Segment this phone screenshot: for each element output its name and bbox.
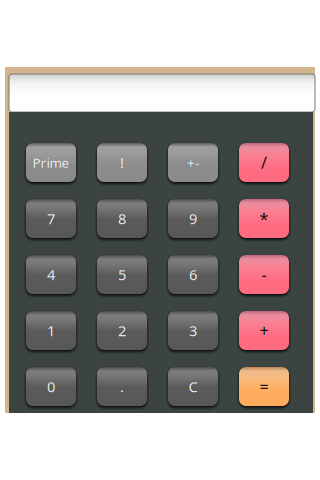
staticText: +-	[187, 154, 199, 171]
staticText: Prime	[32, 154, 69, 171]
staticText: +	[259, 320, 268, 341]
button[interactable]: 9	[168, 199, 218, 238]
button[interactable]: 4	[26, 255, 76, 294]
button[interactable]: -	[239, 255, 289, 294]
staticText: 7	[47, 209, 55, 228]
staticText: *	[259, 208, 268, 229]
button[interactable]: 1	[26, 311, 76, 350]
staticText: 3	[189, 321, 197, 340]
button[interactable]: +	[239, 311, 289, 350]
button[interactable]: 7	[26, 199, 76, 238]
staticText: C	[188, 377, 197, 396]
button[interactable]: *	[239, 199, 289, 238]
button[interactable]: 5	[97, 255, 147, 294]
staticText: =	[259, 376, 268, 397]
button[interactable]: 3	[168, 311, 218, 350]
button[interactable]: !	[97, 143, 147, 182]
button[interactable]: =	[239, 367, 289, 406]
staticText: 0	[47, 377, 55, 396]
staticText: 2	[118, 321, 126, 340]
staticText: 1	[47, 321, 55, 340]
button[interactable]: Prime	[26, 143, 76, 182]
button[interactable]: 0	[26, 367, 76, 406]
staticText: 6	[189, 265, 197, 284]
staticText: 8	[118, 209, 126, 228]
staticText: .	[120, 377, 124, 396]
button[interactable]: 6	[168, 255, 218, 294]
button[interactable]: 8	[97, 199, 147, 238]
staticText: 5	[118, 265, 126, 284]
staticText: -	[261, 264, 266, 285]
button[interactable]: /	[239, 143, 289, 182]
button[interactable]: +-	[168, 143, 218, 182]
staticText: 4	[47, 265, 55, 284]
button[interactable]: 2	[97, 311, 147, 350]
staticText: /	[261, 152, 267, 173]
staticText: 9	[189, 209, 197, 228]
staticText: !	[120, 153, 124, 172]
button[interactable]: C	[168, 367, 218, 406]
button[interactable]: .	[97, 367, 147, 406]
